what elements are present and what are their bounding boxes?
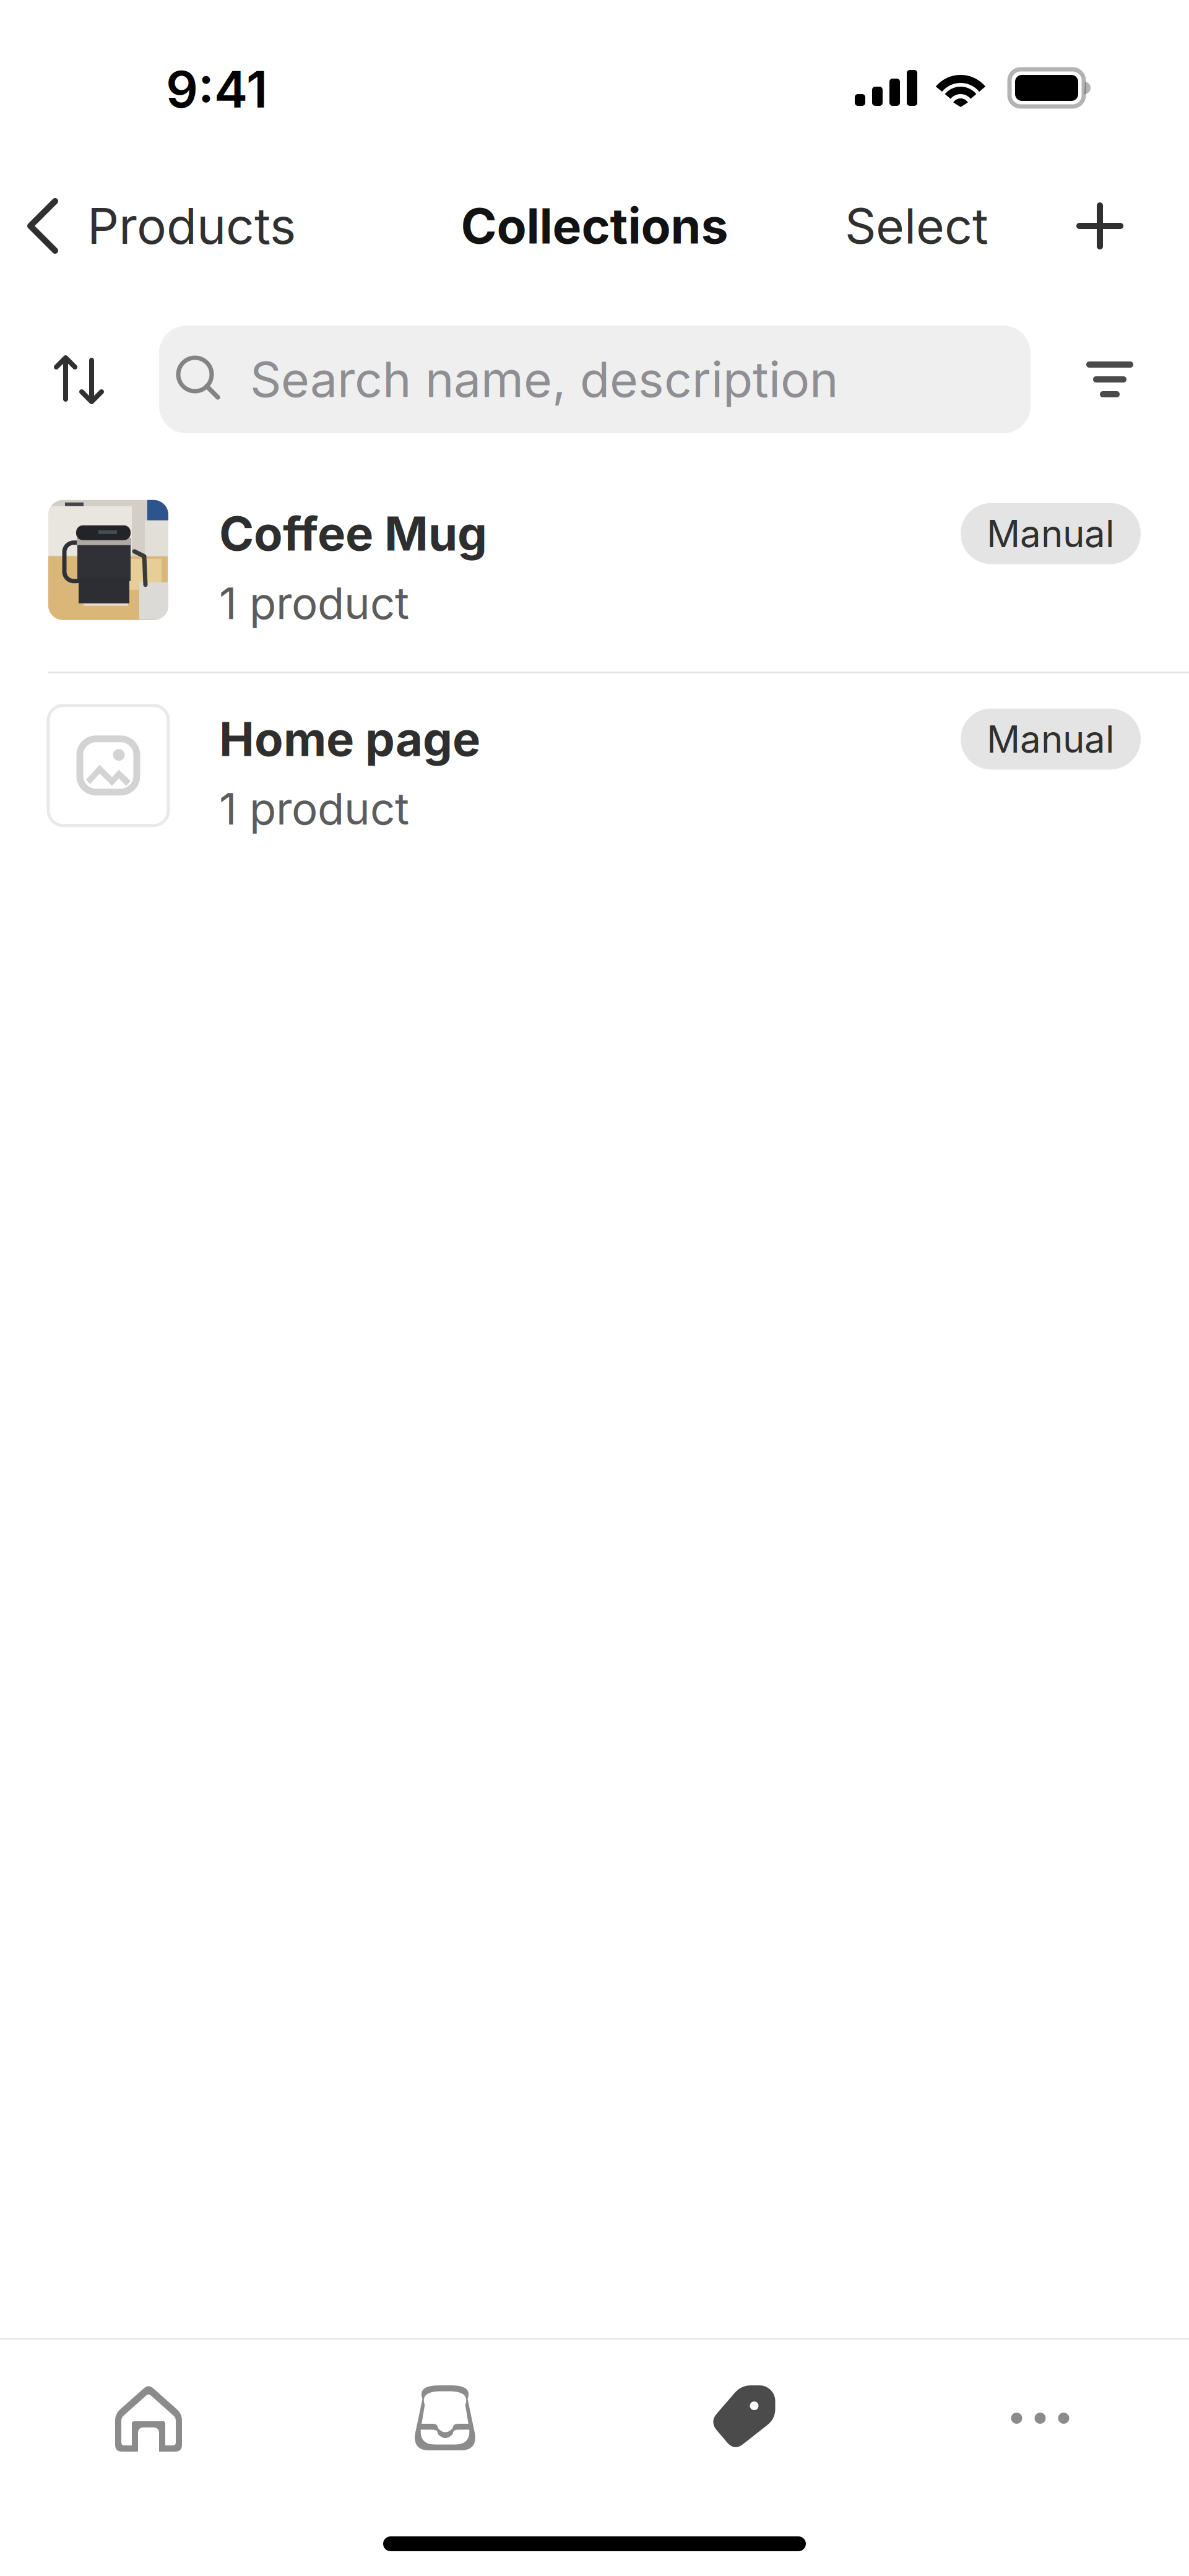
staticText: Coffee Mug (219, 505, 487, 562)
button[interactable]: Products (0, 186, 296, 266)
staticText: 9:41 (166, 59, 267, 120)
button[interactable]: Home (0, 2340, 297, 2497)
button[interactable]: Products (594, 2340, 892, 2497)
staticText: Home page (219, 710, 480, 767)
button[interactable]: Home page (0, 673, 1189, 867)
button[interactable]: More (892, 2340, 1189, 2497)
staticText: 1 product (219, 577, 409, 630)
staticText: Manual (987, 511, 1115, 556)
staticText: Search name, description (250, 350, 838, 409)
button[interactable]: Select (836, 187, 997, 265)
button[interactable]: Add collection (997, 192, 1189, 259)
staticText: Manual (987, 717, 1115, 762)
staticText: 1 product (219, 782, 409, 835)
staticText: Select (845, 196, 988, 255)
button[interactable]: Sort (0, 326, 159, 433)
staticText: Products (87, 196, 296, 256)
button[interactable]: Coffee Mug (0, 458, 1189, 672)
button[interactable]: Orders (297, 2340, 594, 2497)
button[interactable]: Filter (1031, 326, 1189, 433)
staticText: Collections (461, 196, 728, 255)
